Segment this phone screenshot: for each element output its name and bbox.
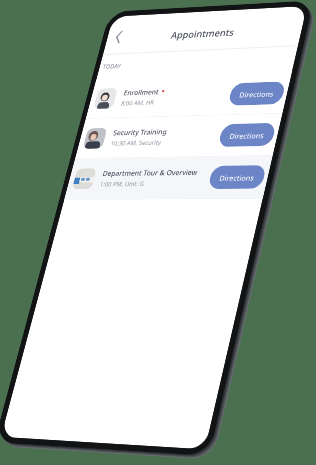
staticText: TODAY [102,62,122,71]
staticText: 1:00 PM, Unit: G [99,180,145,189]
button[interactable]: Enrollment [86,72,292,118]
staticText: Directions [238,89,275,99]
button[interactable]: Security Training [75,114,282,158]
button[interactable]: Directions [207,165,267,189]
button[interactable]: Directions [227,81,286,106]
staticText: Directions [218,172,255,183]
button[interactable]: Back [104,25,133,49]
staticText: Department Tour & Overview [102,167,199,178]
button[interactable]: Department Tour & Overview [64,156,273,199]
staticText: 8:00 AM, HR [120,98,155,108]
button[interactable]: Directions [217,123,277,147]
staticText: Directions [229,130,265,141]
staticText: Enrollment [123,86,161,97]
staticText: Appointments [170,25,236,41]
staticText: 10:30 AM, Security [109,139,162,148]
staticText: Security Training [112,126,169,137]
